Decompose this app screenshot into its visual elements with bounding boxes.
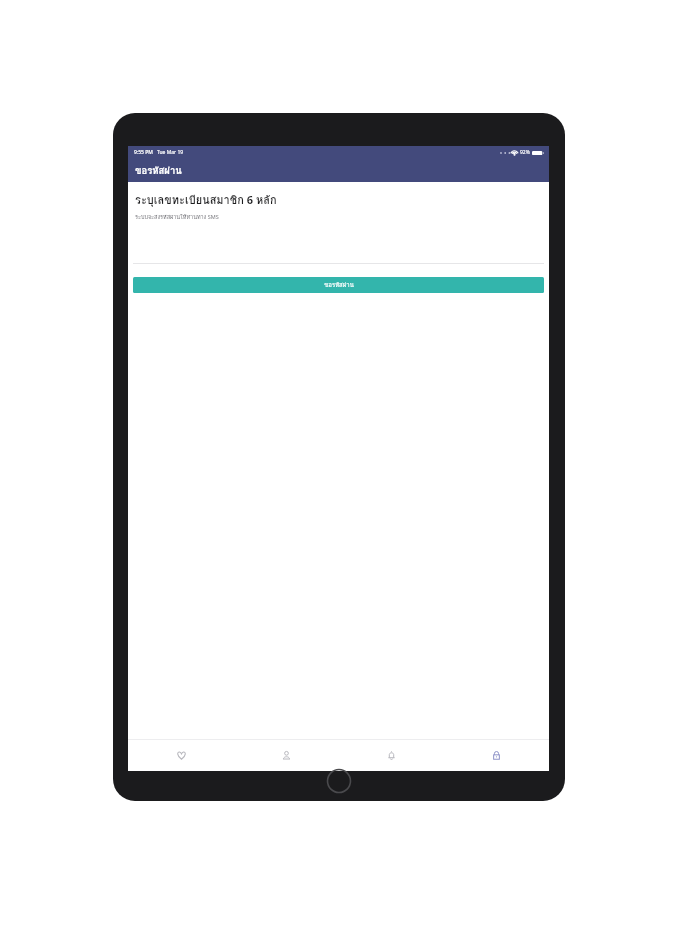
staticText: 92% xyxy=(520,149,530,156)
button[interactable]: Notifications xyxy=(339,740,444,771)
staticText: ระบุเลขทะเบียนสมาชิก 6 หลัก xyxy=(135,191,277,208)
staticText: Tue Mar 19 xyxy=(157,149,184,156)
button[interactable]: Favorites xyxy=(128,740,234,771)
button[interactable]: ขอรหัสผ่าน xyxy=(128,158,549,182)
button[interactable]: Profile xyxy=(234,740,339,771)
button[interactable]: ขอรหัสผ่าน xyxy=(133,277,544,293)
button[interactable] xyxy=(128,250,549,264)
staticText: ขอรหัสผ่าน xyxy=(324,280,354,290)
button[interactable]: Password xyxy=(444,740,549,771)
staticText: ขอรหัสผ่าน xyxy=(135,163,182,178)
button[interactable]: Home xyxy=(326,768,352,794)
staticText: 9:55 PM xyxy=(134,149,153,156)
staticText: ระบบจะส่งรหัสผ่านให้ท่านทาง SMS xyxy=(135,213,219,222)
